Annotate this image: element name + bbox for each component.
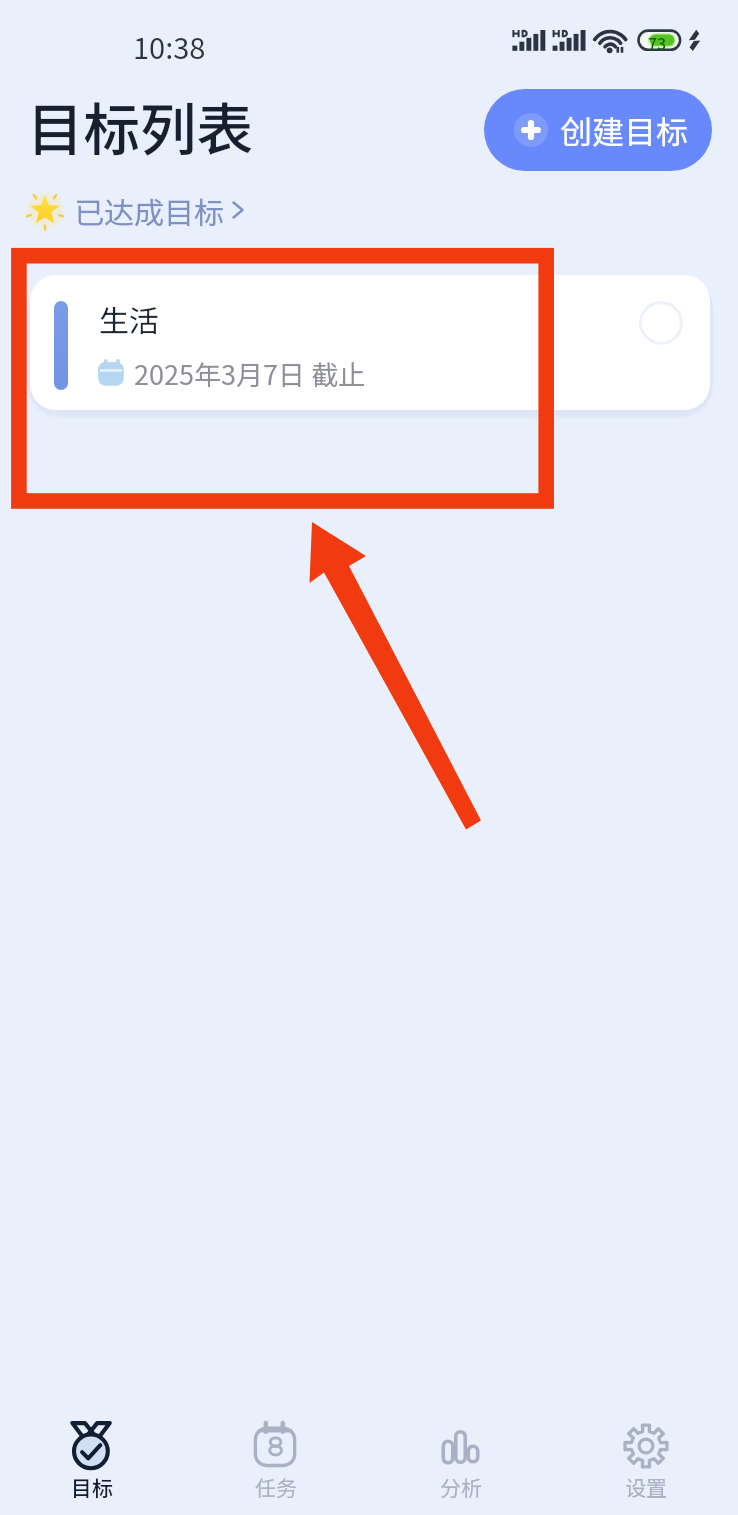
button[interactable]: Mark goal complete [631, 293, 691, 353]
button[interactable]: Analytics [368, 1410, 553, 1515]
button[interactable]: Tasks [184, 1410, 368, 1515]
staticText: 目标 [71, 1472, 113, 1502]
staticText: 创建目标 [560, 107, 689, 153]
staticText: 73 [648, 31, 667, 54]
button[interactable]: Goals [0, 1410, 184, 1515]
staticText: 任务 [255, 1472, 297, 1502]
staticText: 生活 [99, 297, 159, 340]
staticText: 分析 [440, 1472, 482, 1502]
button[interactable]: 创建目标 [484, 89, 712, 171]
staticText: 设置 [625, 1472, 667, 1502]
staticText: 10:38 [133, 25, 206, 67]
staticText: 目标列表 [27, 84, 253, 166]
staticText: 已达成目标 [74, 189, 224, 232]
staticText: 2025年3月7日 截止 [134, 354, 365, 393]
button[interactable]: 已达成目标 [26, 188, 244, 232]
button[interactable]: Settings [553, 1410, 738, 1515]
button[interactable]: 生活 [30, 275, 710, 410]
